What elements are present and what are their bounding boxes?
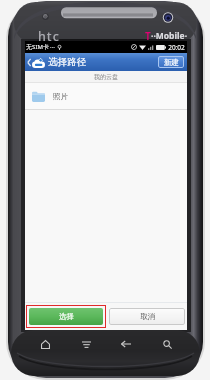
staticText: 无SIM卡 — [26, 43, 49, 51]
button[interactable]: Back — [27, 53, 45, 71]
staticText: 我的云盘 — [94, 73, 118, 81]
staticText: ··Mobile· — [151, 30, 188, 42]
staticText: htc — [38, 28, 60, 45]
staticText: 照片 — [53, 92, 68, 101]
button[interactable]: Search — [156, 333, 178, 355]
staticText: 20:02 — [168, 43, 185, 52]
staticText: 选择 — [59, 312, 74, 321]
button[interactable]: 新建 — [158, 56, 184, 68]
staticText: T — [145, 29, 151, 43]
button[interactable]: 照片 — [25, 83, 187, 109]
button[interactable]: Menu — [75, 333, 97, 355]
button[interactable]: 选择 — [29, 308, 103, 325]
staticText: 取消 — [140, 312, 155, 321]
staticText: 新建 — [164, 58, 179, 67]
button[interactable]: Home — [34, 333, 56, 355]
staticText: 选择路径 — [48, 56, 86, 68]
button[interactable]: 取消 — [109, 308, 185, 325]
button[interactable]: Back — [115, 333, 137, 355]
staticText: ··· — [50, 43, 55, 51]
